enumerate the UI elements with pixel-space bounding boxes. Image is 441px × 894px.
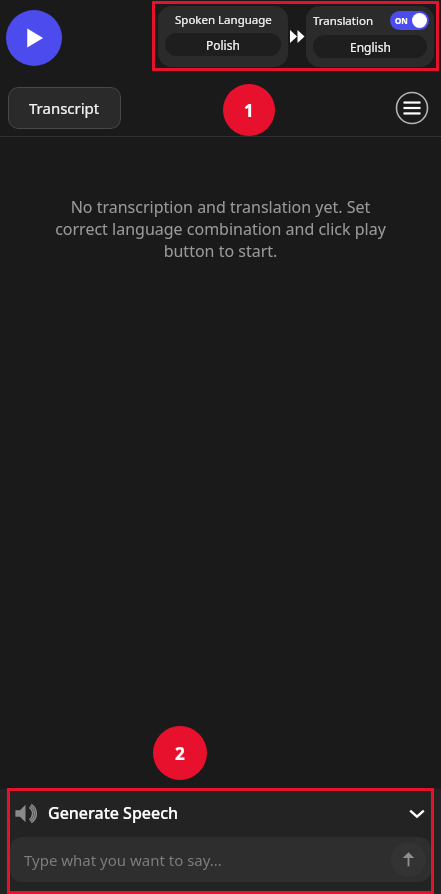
button[interactable]: Transcript xyxy=(8,87,121,129)
button[interactable]: Menu xyxy=(393,89,431,127)
button[interactable]: Generate Speech xyxy=(0,789,441,837)
button[interactable]: Expand xyxy=(407,803,427,823)
button[interactable]: Polish xyxy=(165,33,281,56)
staticText: ON xyxy=(395,15,408,26)
button[interactable]: Translation xyxy=(306,6,434,67)
staticText: Transcript xyxy=(29,98,100,118)
staticText: Polish xyxy=(206,37,240,53)
staticText: English xyxy=(350,39,391,55)
staticText: Spoken Language xyxy=(175,12,272,28)
button[interactable]: English xyxy=(313,35,427,58)
staticText: Generate Speech xyxy=(48,802,179,824)
button[interactable]: Send xyxy=(391,842,426,877)
staticText: 2 xyxy=(175,742,185,765)
button[interactable]: Type what you want to say... xyxy=(10,837,431,882)
staticText: Type what you want to say... xyxy=(24,850,222,870)
button[interactable]: Translation on xyxy=(390,11,429,30)
staticText: 1 xyxy=(244,99,254,122)
staticText: No transcription and translation yet. Se… xyxy=(52,196,389,262)
button[interactable]: Play xyxy=(6,10,62,66)
button[interactable]: Spoken Language xyxy=(158,6,288,67)
staticText: Translation xyxy=(313,13,374,29)
